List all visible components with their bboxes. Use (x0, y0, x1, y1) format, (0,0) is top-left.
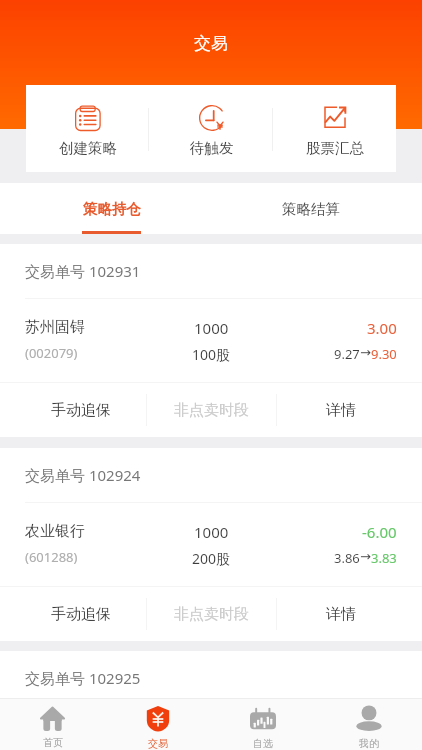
button[interactable]: 创建策略 (26, 85, 150, 172)
other: 交易 (145, 706, 171, 732)
button[interactable]: 交易 (105, 699, 210, 750)
staticText: 1000 (194, 522, 229, 542)
button[interactable]: 手动追保 (16, 587, 146, 641)
staticText: → (360, 345, 371, 360)
staticText: -6.00 (362, 522, 397, 542)
staticText: 手动追保 (51, 401, 111, 420)
button[interactable]: 自选 (210, 699, 316, 750)
staticText: 3.00 (367, 318, 397, 338)
staticText: 我的 (359, 737, 379, 750)
staticText: 策略持仓 (83, 200, 141, 218)
button[interactable]: 我的 (316, 699, 422, 750)
other: 自选 (250, 706, 276, 732)
staticText: 9.27 (334, 345, 360, 363)
staticText: 创建策略 (59, 139, 117, 157)
staticText: 详情 (326, 605, 356, 624)
staticText: 3.83 (371, 549, 397, 567)
staticText: 交易 (194, 33, 228, 54)
staticText: (002079) (25, 344, 78, 362)
button[interactable]: 策略持仓 (12, 183, 211, 234)
staticText: 浦发银行 (25, 725, 85, 744)
staticText: 交易单号 102924 (25, 465, 141, 485)
staticText: 交易单号 102925 (25, 668, 141, 688)
staticText: 2.00 (367, 725, 397, 745)
staticText: 1000 (194, 318, 229, 338)
staticText: 非点卖时段 (174, 401, 249, 420)
staticText: 3.86 (334, 549, 360, 567)
staticText: 策略结算 (282, 200, 340, 218)
staticText: 农业银行 (25, 522, 85, 541)
staticText: → (360, 549, 371, 564)
staticText: 非点卖时段 (174, 605, 249, 624)
staticText: 股票汇总 (306, 139, 364, 157)
button[interactable]: 手动追保 (16, 383, 146, 437)
staticText: 苏州固锝 (25, 318, 85, 337)
staticText: 待触发 (190, 139, 234, 157)
button[interactable]: 详情 (276, 587, 406, 641)
other: 我的 (356, 706, 382, 732)
button[interactable]: 待触发 (150, 85, 273, 172)
staticText: 手动追保 (51, 605, 111, 624)
staticText: 200股 (192, 549, 231, 568)
button[interactable]: 股票汇总 (273, 85, 396, 172)
staticText: 交易单号 102931 (25, 261, 141, 281)
other: 首页 (40, 706, 65, 731)
button[interactable]: 策略结算 (211, 183, 410, 234)
staticText: 100股 (192, 345, 231, 364)
button[interactable]: 详情 (276, 383, 406, 437)
button[interactable]: 首页 (0, 699, 105, 750)
staticText: 首页 (43, 736, 63, 749)
staticText: 交易 (148, 737, 168, 750)
staticText: 自选 (253, 737, 273, 750)
staticText: 详情 (326, 401, 356, 420)
staticText: (601288) (25, 548, 78, 566)
staticText: 9.30 (371, 345, 397, 363)
